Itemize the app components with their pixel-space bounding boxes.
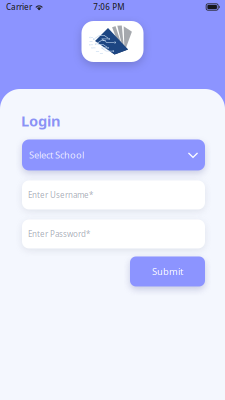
button[interactable]: Select School (22, 139, 205, 170)
staticText: Enter Password* (28, 229, 90, 239)
staticText: 7:06 PM (93, 2, 124, 12)
staticText: Carrier (6, 2, 32, 12)
button[interactable]: Enter Password* (22, 219, 205, 248)
staticText: Select School (29, 149, 84, 161)
button[interactable]: Enter Username* (22, 180, 205, 209)
staticText: Enter Username* (28, 190, 93, 200)
staticText: Submit (152, 265, 183, 278)
staticText: Login (21, 111, 61, 130)
button[interactable]: Submit (130, 256, 205, 286)
